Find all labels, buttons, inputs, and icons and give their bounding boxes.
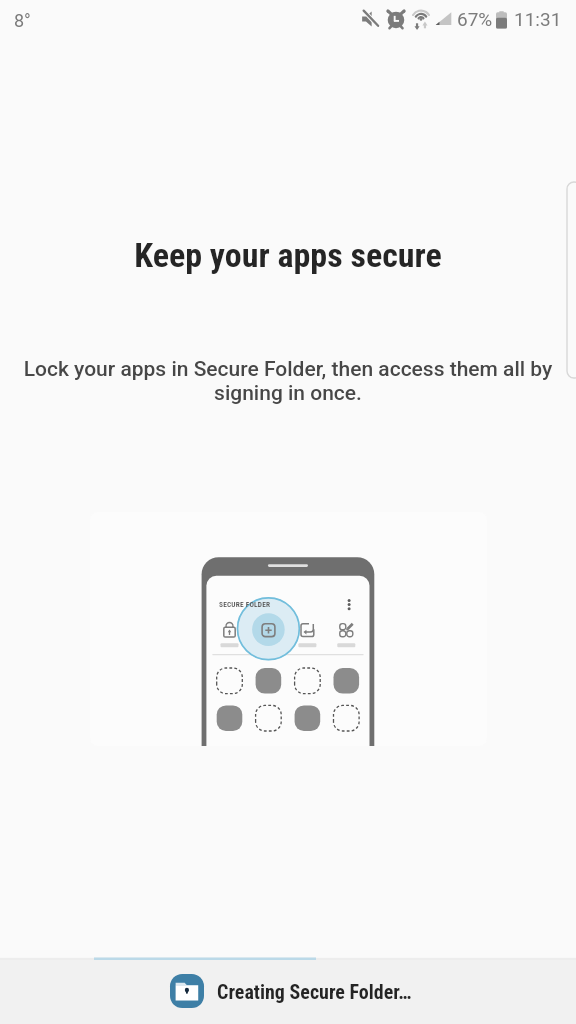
other: Secure Folder bbox=[169, 974, 205, 1008]
staticText: Lock your apps in Secure Folder, then ac… bbox=[12, 357, 564, 405]
staticText: SECURE FOLDER bbox=[219, 600, 271, 609]
staticText: Keep your apps secure bbox=[0, 235, 576, 275]
staticText: 67% bbox=[457, 8, 493, 30]
staticText: Creating Secure Folder… bbox=[217, 980, 412, 1003]
staticText: 8° bbox=[14, 10, 31, 31]
button[interactable] bbox=[0, 960, 576, 1024]
staticText: 11:31 bbox=[514, 8, 562, 30]
